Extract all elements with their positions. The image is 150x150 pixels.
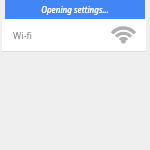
button[interactable]: Opening settings... bbox=[5, 0, 145, 19]
staticText: Wi-fi bbox=[13, 29, 33, 41]
staticText: Opening settings... bbox=[41, 4, 109, 15]
other: Wi-Fi signal strength bbox=[112, 26, 135, 44]
button[interactable]: Wi-fi bbox=[2, 19, 146, 51]
